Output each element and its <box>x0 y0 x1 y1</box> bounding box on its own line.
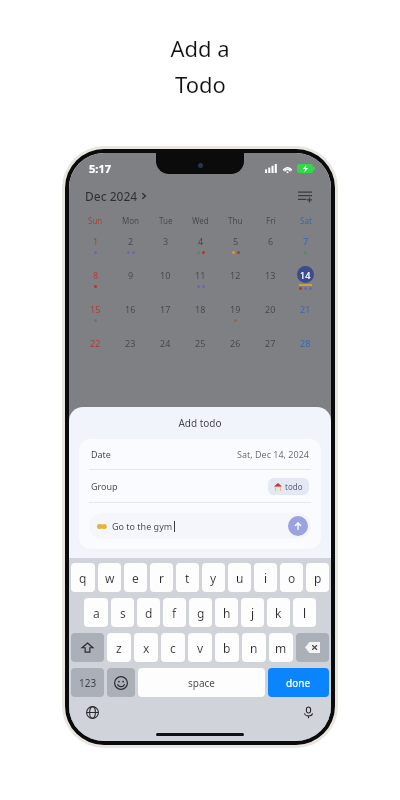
staticText: Date <box>91 448 111 460</box>
staticText: Fri <box>266 215 276 226</box>
staticText: g <box>197 605 205 621</box>
button[interactable]: u <box>228 563 251 592</box>
button[interactable]: c <box>161 633 185 662</box>
button[interactable]: 8 <box>77 263 113 297</box>
staticText: Go to the gym <box>112 520 173 532</box>
button[interactable]: w <box>98 563 121 592</box>
button[interactable]: 14 <box>288 263 323 297</box>
button[interactable]: 4 <box>183 229 218 263</box>
button[interactable]: y <box>202 563 225 592</box>
button[interactable]: 22 <box>77 331 113 365</box>
staticText: Add todo <box>69 416 331 430</box>
button[interactable]: 23 <box>113 331 148 365</box>
button[interactable]: Shift <box>71 633 104 662</box>
button[interactable]: 10 <box>148 263 183 297</box>
staticText: v <box>197 640 204 656</box>
staticText: 21 <box>300 303 311 315</box>
staticText: 6 <box>268 235 274 247</box>
staticText: Thu <box>228 215 243 226</box>
button[interactable]: o <box>280 563 303 592</box>
staticText: d <box>145 605 153 621</box>
staticText: r <box>159 570 164 586</box>
staticText: Sat, Dec 14, 2024 <box>237 448 309 460</box>
staticText: space <box>188 676 215 690</box>
button[interactable]: 25 <box>183 331 218 365</box>
staticText: x <box>143 640 150 656</box>
button[interactable]: t <box>176 563 199 592</box>
staticText: Dec 2024 <box>85 188 138 204</box>
button[interactable]: a <box>84 598 108 627</box>
button[interactable]: Change keyboard <box>83 703 101 721</box>
button[interactable]: p <box>306 563 329 592</box>
staticText: 15 <box>90 303 101 315</box>
staticText: 27 <box>265 337 276 349</box>
button[interactable]: b <box>215 633 239 662</box>
button[interactable]: z <box>107 633 131 662</box>
button[interactable]: 18 <box>183 297 218 331</box>
button[interactable]: 12 <box>218 263 253 297</box>
button[interactable]: l <box>293 598 316 627</box>
button[interactable]: k <box>267 598 290 627</box>
staticText: 26 <box>230 337 241 349</box>
staticText: s <box>120 605 126 621</box>
button[interactable]: 21 <box>288 297 323 331</box>
button[interactable]: f <box>163 598 186 627</box>
button[interactable]: 17 <box>148 297 183 331</box>
staticText: 8 <box>93 269 99 281</box>
staticText: 9 <box>128 269 134 281</box>
button[interactable]: 15 <box>77 297 113 331</box>
button[interactable]: 19 <box>218 297 253 331</box>
staticText: m <box>275 640 287 656</box>
button[interactable]: x <box>134 633 158 662</box>
button[interactable]: Backspace <box>296 633 329 662</box>
button[interactable]: 20 <box>253 297 288 331</box>
button[interactable]: 24 <box>148 331 183 365</box>
button[interactable]: e <box>124 563 147 592</box>
staticText: 123 <box>79 676 97 690</box>
button[interactable]: Group <box>79 470 321 502</box>
staticText: a <box>93 605 100 621</box>
button[interactable]: v <box>188 633 212 662</box>
button[interactable]: 123 <box>71 668 104 697</box>
button[interactable]: m <box>269 633 293 662</box>
button[interactable]: 13 <box>253 263 288 297</box>
button[interactable]: 7 <box>288 229 323 263</box>
button[interactable]: Dec 2024 <box>85 186 148 206</box>
button[interactable]: s <box>111 598 134 627</box>
button[interactable]: 27 <box>253 331 288 365</box>
button[interactable]: Send <box>288 516 308 536</box>
button[interactable]: 11 <box>183 263 218 297</box>
button[interactable]: done <box>268 668 329 697</box>
button[interactable]: g <box>189 598 212 627</box>
button[interactable]: 26 <box>218 331 253 365</box>
staticText: 5 <box>233 235 239 247</box>
button[interactable]: space <box>138 668 265 697</box>
button[interactable]: r <box>150 563 173 592</box>
button[interactable]: i <box>254 563 277 592</box>
button[interactable]: 2 <box>113 229 148 263</box>
button[interactable]: Emoji <box>107 668 135 697</box>
button[interactable]: 9 <box>113 263 148 297</box>
staticText: h <box>223 605 231 621</box>
button[interactable]: h <box>215 598 238 627</box>
button[interactable]: 28 <box>288 331 323 365</box>
staticText: l <box>303 605 307 621</box>
button[interactable]: 3 <box>148 229 183 263</box>
staticText: Mon <box>122 215 140 226</box>
button[interactable]: Date <box>79 439 321 469</box>
button[interactable]: j <box>241 598 264 627</box>
button[interactable]: 6 <box>253 229 288 263</box>
staticText: b <box>223 640 231 656</box>
staticText: z <box>116 640 122 656</box>
button[interactable]: Voice input <box>299 703 317 721</box>
button[interactable]: 1 <box>77 229 113 263</box>
staticText: j <box>251 605 255 621</box>
button[interactable]: 5 <box>218 229 253 263</box>
button[interactable]: Go to the gym <box>89 513 311 539</box>
button[interactable]: Add list <box>295 186 315 206</box>
button[interactable]: 16 <box>113 297 148 331</box>
button[interactable]: d <box>137 598 160 627</box>
staticText: o <box>288 570 296 586</box>
button[interactable]: q <box>71 563 95 592</box>
button[interactable]: n <box>242 633 266 662</box>
